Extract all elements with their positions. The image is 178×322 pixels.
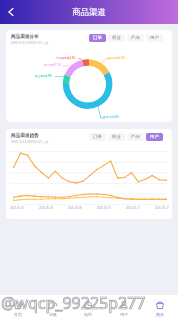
button[interactable]: 订单 (89, 34, 106, 42)
button[interactable]: 产品 (127, 133, 144, 141)
staticText: 流量 (49, 312, 57, 317)
staticText: 产品 (131, 134, 140, 140)
staticText: 2020-05-21 (155, 206, 170, 210)
staticText: 用户 (120, 312, 128, 317)
button[interactable]: 用户 (146, 34, 163, 42)
button[interactable]: 积分 (108, 34, 125, 42)
staticText: 用户 (150, 35, 159, 41)
staticText: 订单 (93, 35, 102, 41)
staticText: 2020-05-17 (126, 206, 141, 210)
button[interactable]: 用户 (106, 295, 142, 322)
staticText: 2019-12-31-2019-01-01 上传 (11, 41, 49, 45)
staticText: 直销订单54% (103, 115, 120, 119)
staticText: 2020-05-13 (97, 206, 112, 210)
staticText: 商品渠道趋势 (11, 133, 39, 139)
staticText: 积分 (112, 35, 121, 41)
button[interactable]: 订单 (89, 133, 106, 141)
staticText: 订单 (93, 134, 102, 140)
button[interactable]: 积分 (108, 133, 125, 141)
staticText: 商品 (156, 312, 164, 317)
staticText: 线上销售4.9% (35, 74, 52, 78)
staticText: 用户 (150, 134, 159, 140)
staticText: 商品渠道分布 (11, 34, 39, 40)
staticText: 首页 (14, 312, 22, 317)
button[interactable]: 转化 (70, 295, 106, 322)
staticText: 转化 (84, 312, 92, 317)
staticText: 积分 (112, 134, 121, 140)
staticText: 2019-12-31-2019-01-01 上传 (11, 140, 49, 144)
button[interactable]: Back (3, 4, 19, 20)
button[interactable]: 用户 (146, 133, 163, 141)
button[interactable]: 商品 (142, 295, 178, 322)
staticText: 商品渠道 (72, 7, 106, 18)
staticText: 线下销售7.1% (44, 63, 61, 67)
button[interactable]: 流量 (35, 295, 70, 322)
button[interactable]: 产品 (127, 34, 144, 42)
staticText: 产品销售额3.5% (56, 56, 76, 60)
staticText: @wqcp_99225p277 (1, 292, 146, 314)
staticText: 2020-05-01 (10, 206, 25, 210)
staticText: 2020-05-05 (39, 206, 54, 210)
button[interactable]: 首页 (0, 295, 35, 322)
staticText: 2020-05-09 (68, 206, 83, 210)
staticText: 积分兑换3.1% (108, 56, 125, 60)
staticText: 产品 (131, 35, 140, 41)
